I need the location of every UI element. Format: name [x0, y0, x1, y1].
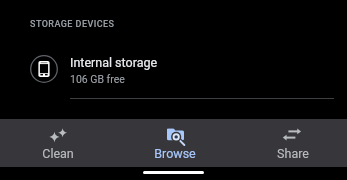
- button[interactable]: Browse: [116, 119, 234, 167]
- button[interactable]: Clean: [0, 119, 116, 167]
- staticText: STORAGE DEVICES: [30, 19, 115, 30]
- staticText: Clean: [42, 146, 74, 161]
- staticText: 106 GB free: [70, 73, 125, 85]
- button[interactable]: Share: [234, 119, 347, 167]
- other: Clean: [49, 126, 66, 143]
- staticText: Browse: [154, 146, 196, 161]
- staticText: Share: [277, 146, 309, 161]
- other: Share: [285, 126, 302, 143]
- staticText: Internal storage: [70, 55, 158, 70]
- button[interactable]: Internal storage: [0, 40, 347, 98]
- other: Browse: [167, 126, 184, 143]
